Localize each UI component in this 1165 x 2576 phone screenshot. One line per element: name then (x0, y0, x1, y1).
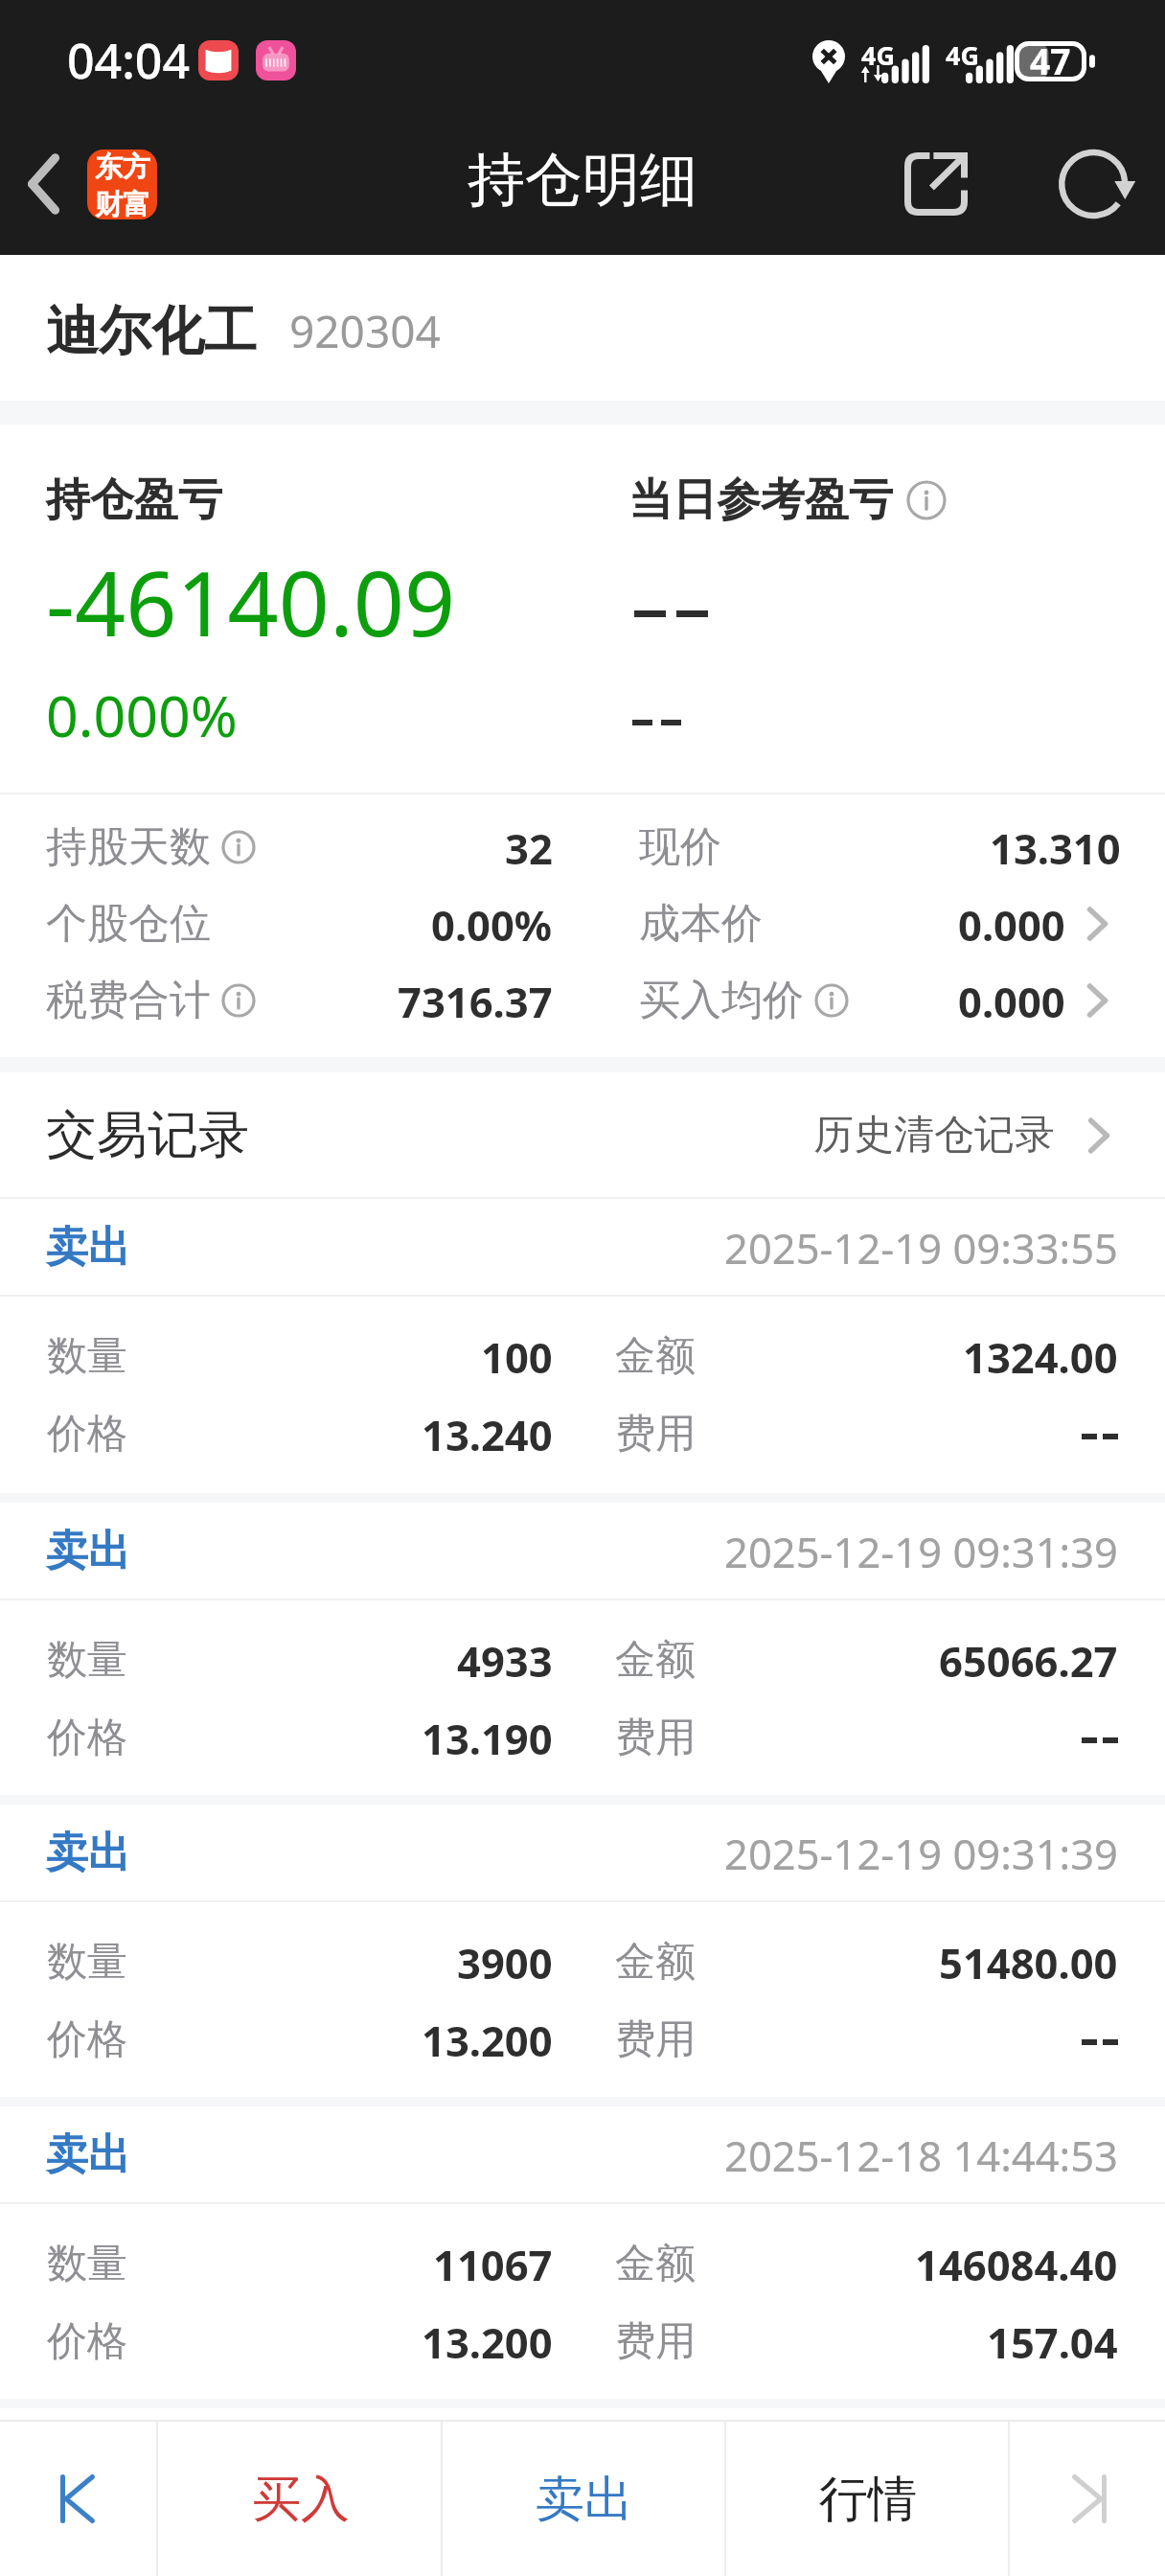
staticText: 3900 (457, 1934, 553, 1990)
staticText: 东方 (95, 149, 150, 185)
staticText: 数量 (47, 1635, 127, 1686)
staticText: 持股天数 (46, 821, 211, 873)
staticText: 费用 (615, 2316, 696, 2367)
staticText: 持仓盈亏 (46, 472, 222, 528)
staticText: 卖出 (46, 1221, 130, 1274)
staticText: 卖出 (536, 2469, 633, 2530)
button[interactable]: Refresh (996, 119, 1165, 249)
staticText: 13.310 (990, 819, 1121, 876)
staticText: 13.240 (422, 1406, 553, 1462)
staticText: 价格 (47, 2316, 127, 2367)
staticText: 13.190 (422, 1710, 553, 1766)
staticText: -46140.09 (46, 541, 456, 663)
button[interactable]: Back (0, 119, 86, 249)
staticText: 7316.37 (398, 973, 553, 1029)
button[interactable]: 卖出 (0, 1805, 1165, 2097)
staticText: 920304 (289, 301, 441, 361)
staticText: 13.200 (422, 2012, 553, 2068)
staticText: 卖出 (46, 1827, 130, 1879)
button[interactable]: 历史清仓记录 (813, 1110, 1109, 1161)
staticText: 金额 (615, 1331, 696, 1382)
staticText: 当日参考盈亏 (628, 472, 893, 528)
staticText: 金额 (615, 2239, 696, 2289)
staticText: 金额 (615, 1635, 696, 1686)
staticText: 现价 (639, 821, 721, 873)
staticText: 税费合计 (46, 975, 211, 1026)
staticText: 买入 (252, 2469, 350, 2530)
staticText: 买入均价 (639, 975, 804, 1026)
staticText: 数量 (47, 2239, 127, 2289)
staticText: 0.000 (958, 896, 1065, 953)
button[interactable]: First page (0, 2422, 158, 2576)
staticText: 4G (861, 37, 895, 73)
staticText: 13.200 (422, 2313, 553, 2370)
staticText: 迪尔化工 (46, 298, 257, 364)
button[interactable] (582, 885, 1165, 962)
staticText: 4933 (457, 1632, 553, 1689)
staticText: 历史清仓记录 (813, 1110, 1055, 1161)
staticText: 65066.27 (939, 1632, 1118, 1689)
button[interactable]: Last page (1010, 2422, 1165, 2576)
staticText: 持仓明细 (468, 144, 697, 217)
staticText: 2025-12-18 14:44:53 (724, 2127, 1118, 2183)
staticText: 1324.00 (963, 1328, 1118, 1385)
button[interactable]: 行情 (726, 2422, 1010, 2576)
button[interactable]: 卖出 (0, 2106, 1165, 2399)
staticText: 157.04 (987, 2313, 1118, 2370)
button[interactable] (582, 962, 1165, 1039)
button[interactable]: 卖出 (0, 1199, 1165, 1493)
staticText: 4G (946, 37, 979, 73)
staticText: 价格 (47, 2014, 127, 2065)
staticText: 数量 (47, 1331, 127, 1382)
staticText: 卖出 (46, 2128, 130, 2181)
button[interactable]: East Money home (87, 149, 157, 219)
staticText: 2025-12-19 09:33:55 (724, 1219, 1118, 1276)
staticText: 金额 (615, 1937, 696, 1988)
staticText: 0.000% (46, 677, 238, 753)
staticText: 0.00% (431, 896, 553, 953)
staticText: 11067 (433, 2236, 553, 2292)
staticText: 价格 (47, 1713, 127, 1763)
button[interactable]: Share (874, 119, 998, 249)
staticText: 0.000 (958, 973, 1065, 1029)
staticText: 费用 (615, 2014, 696, 2065)
staticText: 47 (1030, 36, 1071, 84)
staticText: 100 (481, 1328, 553, 1385)
staticText: 146084.40 (915, 2236, 1118, 2292)
staticText: 2025-12-19 09:31:39 (724, 1825, 1118, 1881)
button[interactable]: 卖出 (443, 2422, 726, 2576)
staticText: 32 (505, 819, 553, 876)
staticText: 价格 (47, 1409, 127, 1460)
staticText: 51480.00 (939, 1934, 1118, 1990)
staticText: 卖出 (46, 1525, 130, 1577)
button[interactable]: 卖出 (0, 1503, 1165, 1795)
staticText: 交易记录 (46, 1103, 249, 1167)
staticText: 财富 (95, 187, 150, 219)
staticText: 2025-12-19 09:31:39 (724, 1523, 1118, 1579)
staticText: 费用 (615, 1409, 696, 1460)
staticText: 个股仓位 (46, 898, 211, 950)
button[interactable]: 买入 (158, 2422, 443, 2576)
staticText: 04:04 (67, 28, 190, 93)
staticText: 费用 (615, 1713, 696, 1763)
staticText: 成本价 (639, 898, 763, 950)
staticText: 行情 (819, 2469, 917, 2530)
staticText: 数量 (47, 1937, 127, 1988)
